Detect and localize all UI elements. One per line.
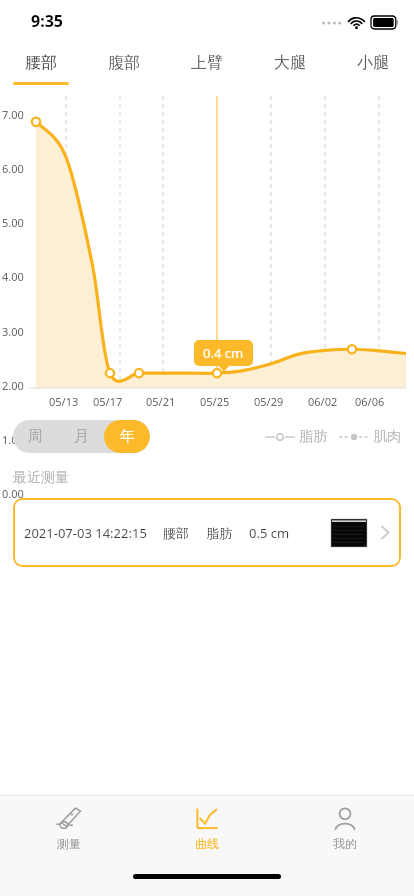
staticText: 05/21 (146, 394, 176, 409)
staticText: 月 (74, 427, 89, 446)
staticText: 腰部 (25, 53, 57, 73)
staticText: 2021-07-03 14:22:15 (24, 524, 147, 542)
staticText: 05/25 (200, 394, 230, 409)
button[interactable]: 腹部 (82, 44, 165, 96)
button[interactable]: 腰部 (0, 44, 82, 96)
button[interactable]: 测量 (0, 796, 138, 851)
staticText: 1.00 (2, 432, 24, 447)
staticText: 0.5 cm (249, 524, 290, 542)
button[interactable]: 2021-07-03 14:22:15 (13, 498, 401, 567)
button[interactable]: 周 (13, 420, 58, 453)
button[interactable]: 小腿 (331, 44, 414, 96)
staticText: 06/06 (355, 394, 385, 409)
staticText: 0.00 (2, 486, 24, 501)
staticText: 脂肪 (299, 428, 327, 446)
button[interactable]: 月 (58, 420, 104, 453)
button[interactable]: 我的 (276, 796, 414, 851)
staticText: 9:35 (31, 10, 63, 32)
staticText: 上臂 (191, 53, 223, 73)
staticText: 小腿 (357, 53, 389, 73)
button[interactable]: 脂肪 (265, 428, 327, 446)
staticText: 腰部 (163, 525, 189, 541)
staticText: 测量 (57, 836, 81, 851)
staticText: 5.00 (2, 215, 24, 230)
staticText: 年 (120, 427, 135, 446)
staticText: 6.00 (2, 161, 24, 176)
button[interactable]: 曲线 (138, 796, 276, 851)
staticText: 05/29 (254, 394, 284, 409)
button[interactable]: 年 (104, 420, 150, 453)
staticText: 7.00 (2, 107, 24, 122)
staticText: 05/17 (93, 394, 123, 409)
staticText: 周 (28, 427, 43, 446)
button[interactable]: 上臂 (165, 44, 248, 96)
staticText: 05/13 (49, 394, 79, 409)
staticText: 曲线 (195, 836, 219, 851)
staticText: 06/02 (308, 394, 338, 409)
staticText: 大腿 (274, 53, 306, 73)
staticText: 脂肪 (206, 525, 232, 541)
button[interactable]: 大腿 (248, 44, 331, 96)
staticText: 2.00 (2, 378, 24, 393)
staticText: 我的 (333, 836, 357, 851)
staticText: 3.00 (2, 324, 24, 339)
staticText: 腹部 (108, 53, 140, 73)
staticText: 最近测量 (13, 469, 69, 487)
button[interactable]: 肌肉 (339, 428, 401, 446)
staticText: 肌肉 (373, 428, 401, 446)
staticText: 0.4 cm (203, 344, 244, 362)
staticText: 4.00 (2, 269, 24, 284)
